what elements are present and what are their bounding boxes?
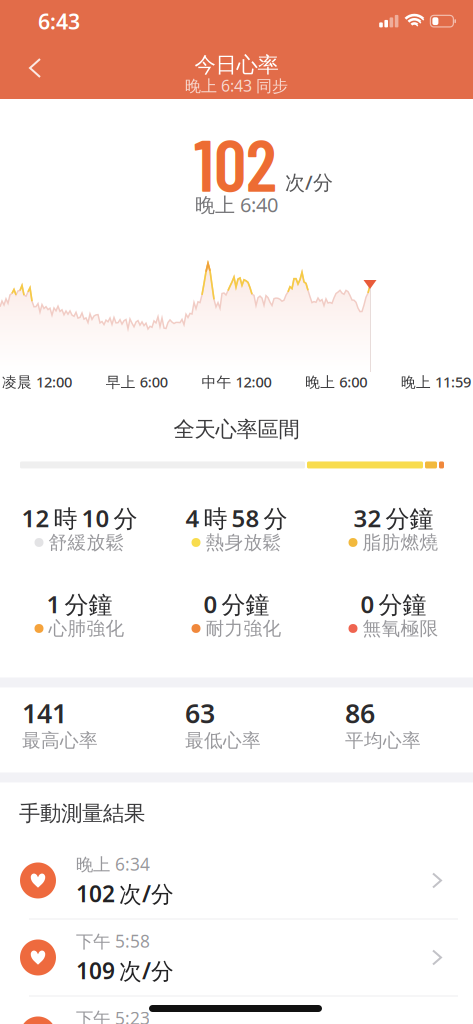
- staticText: 手動測量結果: [19, 800, 145, 827]
- staticText: 32 分鐘: [353, 502, 433, 534]
- staticText: 無氧極限: [362, 617, 438, 640]
- staticText: 全天心率區間: [173, 416, 299, 443]
- staticText: 今日心率: [194, 52, 278, 78]
- staticText: 最低心率: [185, 729, 261, 752]
- staticText: 86: [345, 695, 375, 731]
- staticText: 0 分鐘: [203, 588, 269, 620]
- staticText: 熱身放鬆: [205, 531, 281, 554]
- staticText: 4 時 58 分: [185, 502, 287, 534]
- staticText: 最高心率: [22, 729, 98, 752]
- staticText: 晚上 6:34: [76, 852, 150, 875]
- staticText: 平均心率: [345, 729, 421, 752]
- staticText: 12 時 10 分: [21, 502, 137, 534]
- staticText: 1 分鐘: [46, 588, 112, 620]
- staticText: 脂肪燃燒: [362, 531, 438, 554]
- staticText: 舒緩放鬆: [48, 531, 124, 554]
- staticText: 耐力強化: [205, 617, 281, 640]
- staticText: 下午 5:58: [76, 929, 150, 952]
- button[interactable]: 下午 5:58: [0, 919, 473, 995]
- button[interactable]: 下午 5:23: [0, 996, 473, 1024]
- button[interactable]: 晚上 6:34: [0, 842, 473, 918]
- staticText: 102: [194, 120, 277, 206]
- staticText: 次/分: [285, 169, 333, 195]
- staticText: 晚上 11:59: [401, 372, 471, 391]
- staticText: 141: [22, 695, 67, 731]
- button[interactable]: Back: [0, 0, 40, 77]
- staticText: 晚上 6:40: [195, 191, 278, 218]
- staticText: 晚上 6:43 同步: [185, 75, 288, 96]
- staticText: 63: [185, 695, 215, 731]
- staticText: 109 次/分: [76, 955, 174, 985]
- staticText: 102 次/分: [76, 878, 174, 908]
- staticText: 6:43: [38, 7, 80, 35]
- staticText: 0 分鐘: [360, 588, 426, 620]
- staticText: 心肺強化: [48, 617, 124, 640]
- staticText: 下午 5:23: [76, 1006, 150, 1024]
- staticText: 早上 6:00: [106, 372, 168, 391]
- staticText: 晚上 6:00: [305, 372, 367, 391]
- staticText: 凌晨 12:00: [2, 372, 72, 391]
- staticText: 中午 12:00: [201, 372, 271, 391]
